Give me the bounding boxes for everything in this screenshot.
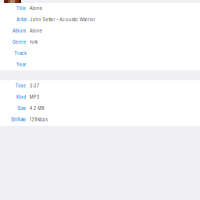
button[interactable]: Kind — [0, 92, 200, 103]
staticText: Year — [16, 62, 26, 67]
button[interactable]: Artist — [0, 14, 200, 25]
staticText: Genre — [12, 39, 26, 45]
staticText: MP3 — [29, 94, 39, 100]
staticText: John Setter – Acoustic Warrior — [29, 17, 95, 22]
staticText: Artist — [16, 17, 26, 22]
staticText: Alone — [29, 28, 42, 34]
button[interactable]: Title — [0, 3, 200, 14]
staticText: Kind — [16, 94, 26, 100]
staticText: 3:37 — [29, 83, 38, 89]
staticText: Track — [14, 51, 26, 56]
staticText: Bit Rate — [11, 117, 26, 122]
staticText: Album — [12, 28, 26, 34]
button[interactable]: Genre — [0, 37, 200, 48]
button[interactable]: Album — [0, 25, 200, 37]
button[interactable]: Bit Rate — [0, 114, 200, 125]
staticText: 4.2 MB — [29, 106, 44, 111]
button[interactable]: Track — [0, 48, 200, 59]
button[interactable]: Time — [0, 80, 200, 92]
staticText: Alone — [29, 6, 42, 11]
staticText: Time — [15, 83, 26, 89]
staticText: Size — [17, 106, 26, 111]
staticText: 128kbps — [29, 117, 47, 122]
button[interactable]: Size — [0, 103, 200, 114]
staticText: Folk — [29, 39, 37, 45]
staticText: Title — [16, 6, 26, 11]
button[interactable]: Year — [0, 59, 200, 70]
